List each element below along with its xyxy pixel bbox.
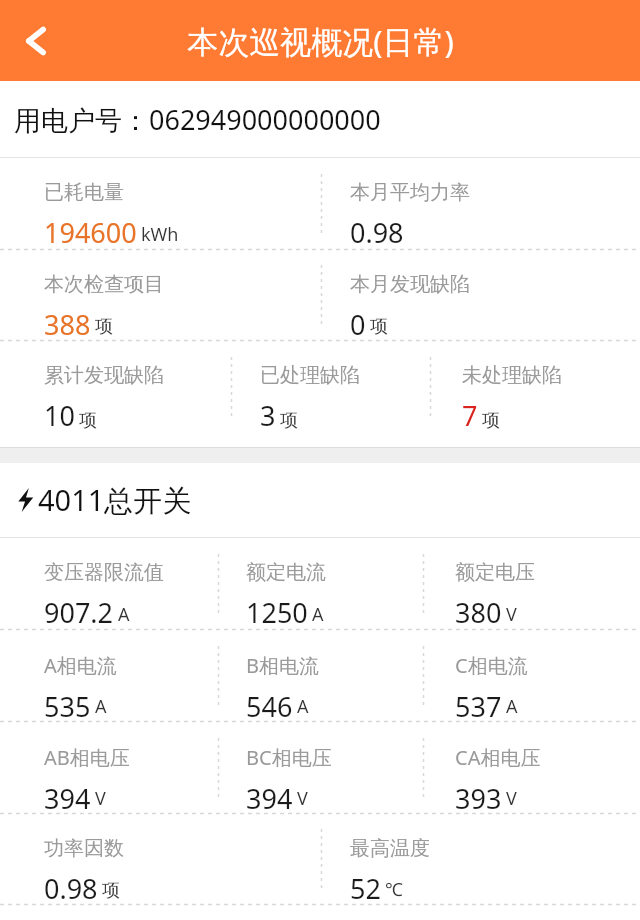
staticText: A相电流	[44, 652, 117, 679]
staticText: 用电户号：062949000000000	[14, 101, 381, 138]
staticText: 393	[455, 780, 502, 813]
staticText: 546	[246, 688, 293, 721]
staticText: 本次检查项目	[44, 272, 164, 297]
staticText: 项	[482, 409, 500, 432]
staticText: 394	[246, 780, 293, 813]
staticText: 额定电压	[455, 560, 535, 585]
staticText: 907.2	[44, 594, 114, 629]
staticText: A	[312, 602, 324, 627]
staticText: CA相电压	[455, 744, 541, 771]
staticText: 0.98	[350, 214, 404, 249]
staticText: 未处理缺陷	[462, 363, 562, 388]
staticText: 已耗电量	[44, 180, 124, 205]
staticText: 1250	[246, 594, 308, 629]
staticText: 已处理缺陷	[260, 363, 360, 388]
staticText: V	[297, 786, 308, 811]
staticText: V	[95, 786, 106, 811]
staticText: A	[95, 694, 107, 719]
staticText: kWh	[141, 222, 179, 247]
staticText: 4011总开关	[38, 480, 192, 520]
staticText: 变压器限流值	[44, 560, 164, 585]
staticText: V	[506, 786, 517, 811]
staticText: 本月发现缺陷	[350, 272, 470, 297]
staticText: 380	[455, 594, 502, 629]
staticText: V	[506, 602, 517, 627]
staticText: 额定电流	[246, 560, 326, 585]
staticText: 535	[44, 688, 91, 721]
staticText: 52	[350, 870, 381, 904]
staticText: 最高温度	[350, 836, 430, 861]
staticText: C相电流	[455, 652, 528, 679]
button[interactable]: Back	[0, 5, 72, 77]
staticText: 394	[44, 780, 91, 813]
staticText: 功率因数	[44, 836, 124, 861]
staticText: 0.98	[44, 870, 98, 904]
staticText: A	[506, 694, 518, 719]
staticText: 项	[370, 315, 388, 338]
staticText: 本月平均力率	[350, 180, 470, 205]
staticText: B相电流	[246, 652, 319, 679]
staticText: AB相电压	[44, 744, 130, 771]
staticText: 194600	[44, 214, 137, 249]
staticText: 项	[102, 879, 120, 902]
staticText: 项	[280, 409, 298, 432]
staticText: 3	[260, 397, 276, 434]
staticText: 项	[79, 409, 97, 432]
staticText: 7	[462, 397, 478, 434]
staticText: 累计发现缺陷	[44, 363, 164, 388]
staticText: 10	[44, 397, 75, 434]
staticText: 388	[44, 306, 91, 340]
staticText: 0	[350, 306, 366, 340]
staticText: A	[297, 694, 309, 719]
staticText: BC相电压	[246, 744, 332, 771]
staticText: ℃	[385, 877, 403, 902]
staticText: 537	[455, 688, 502, 721]
staticText: A	[118, 602, 130, 627]
staticText: 本次巡视概况(日常)	[187, 20, 454, 62]
staticText: 项	[95, 315, 113, 338]
